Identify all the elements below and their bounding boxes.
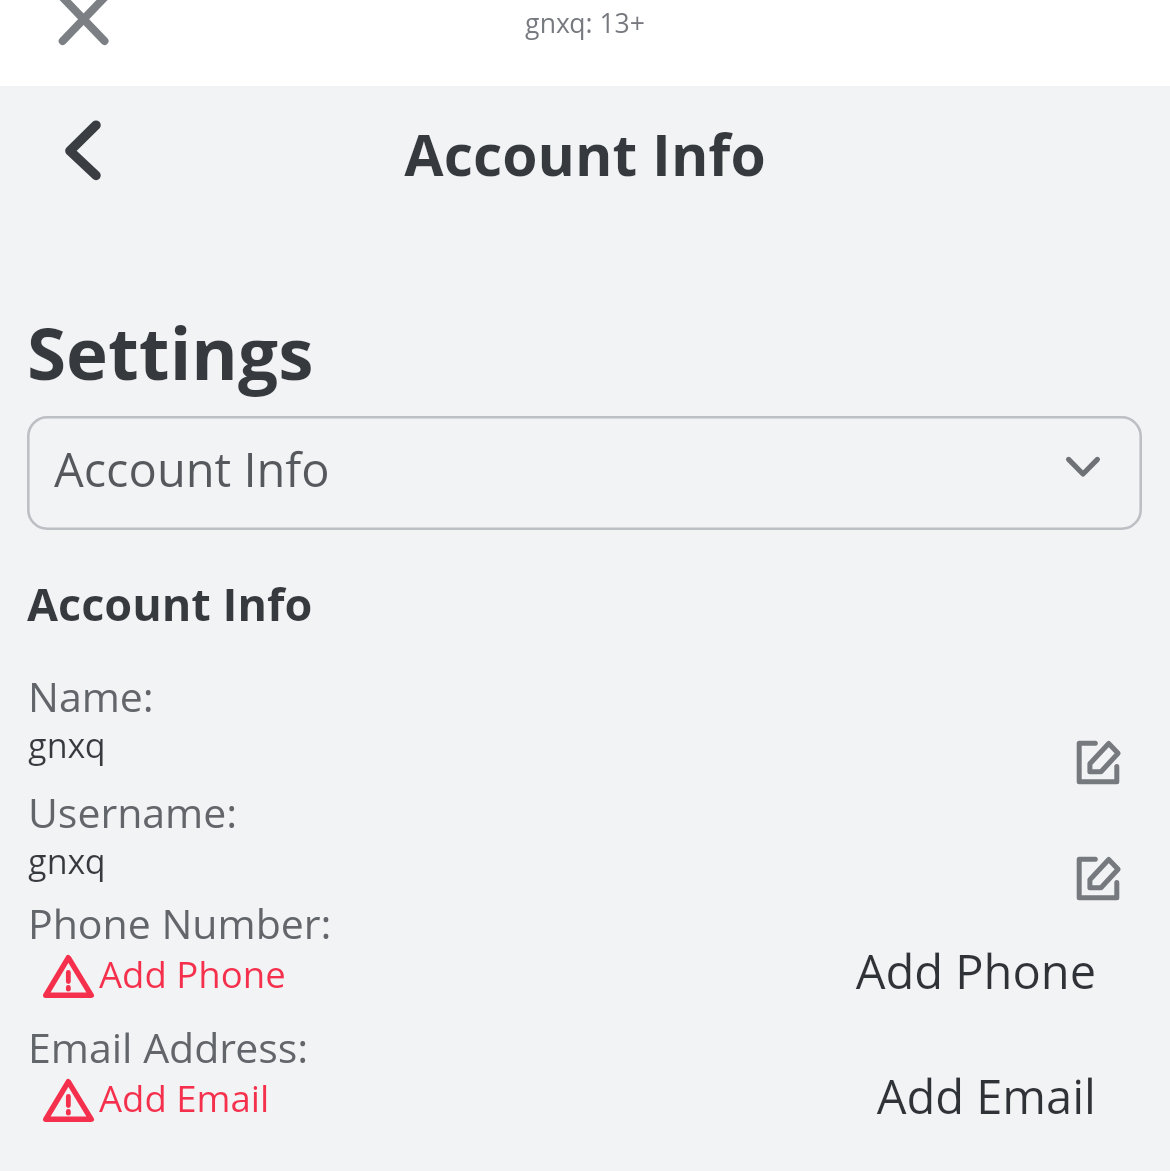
staticText: Account Info	[27, 573, 313, 634]
staticText: gnxq	[28, 722, 106, 768]
staticText: Phone Number:	[28, 895, 332, 951]
button[interactable]: Add Phone	[43, 949, 293, 1007]
staticText: Account Info	[185, 115, 985, 195]
button[interactable]: Add Email	[700, 1064, 1096, 1126]
staticText: Username:	[28, 784, 238, 840]
button[interactable]: Edit	[1074, 854, 1128, 906]
staticText: Add Phone	[700, 939, 1096, 1001]
staticText: Settings	[27, 304, 314, 401]
button[interactable]: Back	[50, 108, 114, 192]
button[interactable]: Close	[52, 0, 116, 52]
staticText: Name:	[28, 668, 154, 724]
button[interactable]: Add Email	[43, 1073, 293, 1131]
button[interactable]: Add Phone	[700, 939, 1096, 1001]
staticText: gnxq: 13+	[385, 5, 785, 53]
staticText: Account Info	[54, 437, 330, 501]
button[interactable]: Account Info	[27, 416, 1142, 530]
staticText: Add Email	[99, 1073, 270, 1123]
button[interactable]: Edit	[1074, 738, 1128, 790]
staticText: gnxq	[28, 838, 106, 884]
staticText: Add Phone	[99, 949, 286, 999]
staticText: Email Address:	[28, 1019, 309, 1075]
staticText: Add Email	[700, 1064, 1096, 1126]
